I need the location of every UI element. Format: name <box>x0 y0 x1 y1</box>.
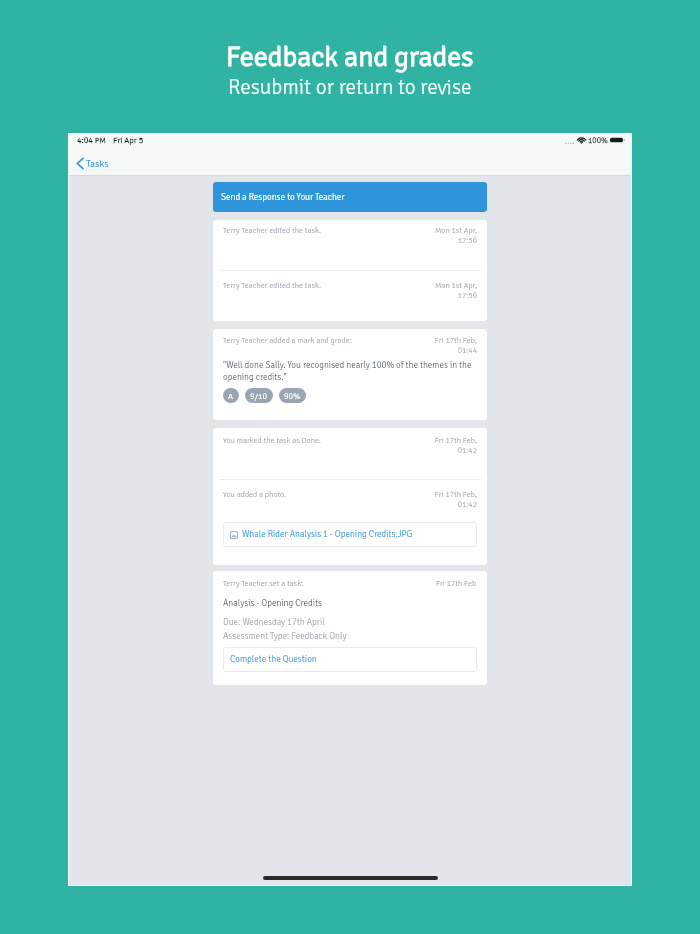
button[interactable]: A <box>223 388 239 403</box>
staticText: Mon 1st Apr, <box>434 280 477 290</box>
staticText: 4:04 PM <box>77 135 107 145</box>
staticText: Fri 17th Feb, <box>434 435 477 445</box>
staticText: Terry Teacher edited the task. <box>223 225 434 235</box>
staticText: 17:56 <box>457 235 477 245</box>
staticText: 01:42 <box>457 499 477 509</box>
staticText: Assessment Type: Feedback Only <box>223 631 347 642</box>
staticText: You added a photo. <box>223 489 434 499</box>
button[interactable]: Tasks <box>74 154 111 173</box>
staticText: Fri 17th Feb <box>436 578 477 588</box>
staticText: Terry Teacher set a task: <box>223 578 436 588</box>
staticText: 17:56 <box>457 290 477 300</box>
staticText: "Well done Sally. You recognised nearly … <box>223 360 477 382</box>
staticText: Mon 1st Apr, <box>434 225 477 235</box>
other: Battery <box>610 136 625 144</box>
button[interactable]: Whale Rider Analysis 1 - Opening Credits… <box>223 522 477 547</box>
staticText: 100% <box>588 135 608 145</box>
staticText: Feedback and grades <box>226 40 474 74</box>
staticText: Fri 17th Feb, <box>434 489 477 499</box>
button[interactable]: Terry Teacher edited the task. <box>213 220 487 270</box>
staticText: 9/10 <box>250 391 268 401</box>
button[interactable]: 9/10 <box>245 388 273 403</box>
button[interactable]: Send a Response to Your Teacher <box>213 182 487 212</box>
staticText: Fri Apr 5 <box>113 135 144 145</box>
button[interactable]: Terry Teacher edited the task. <box>213 271 487 321</box>
staticText: Due: Wednesday 17th April <box>223 617 325 628</box>
staticText: Complete the Question <box>230 654 317 665</box>
staticText: Terry Teacher edited the task. <box>223 280 434 290</box>
staticText: 01:44 <box>457 345 477 355</box>
staticText: Analysis - Opening Credits <box>223 598 322 609</box>
staticText: Fri 17th Feb, <box>434 335 477 345</box>
staticText: Send a Response to Your Teacher <box>221 192 345 203</box>
button[interactable]: You marked the task as Done. <box>213 428 487 479</box>
staticText: Whale Rider Analysis 1 - Opening Credits… <box>242 529 413 540</box>
other: Wi-Fi <box>577 136 586 144</box>
staticText: Tasks <box>86 158 109 170</box>
staticText: 01:42 <box>457 445 477 455</box>
button[interactable]: You added a photo. <box>213 480 487 522</box>
button[interactable]: Complete the Question <box>223 647 477 672</box>
staticText: Resubmit or return to revise <box>228 74 472 100</box>
staticText: You marked the task as Done. <box>223 435 434 445</box>
staticText: A <box>228 391 234 401</box>
button[interactable]: 90% <box>279 388 306 403</box>
staticText: 90% <box>284 391 301 401</box>
staticText: Terry Teacher added a mark and grade: <box>223 335 434 345</box>
